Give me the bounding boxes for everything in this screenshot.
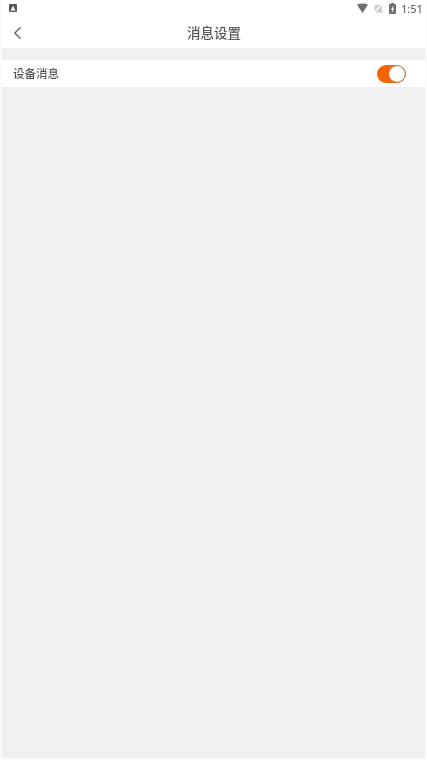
staticText: 消息设置 bbox=[187, 22, 241, 42]
other: App notification bbox=[9, 4, 17, 12]
button[interactable]: Device messages toggle bbox=[377, 65, 406, 83]
button[interactable]: Back bbox=[0, 17, 40, 48]
button[interactable]: 设备消息 bbox=[0, 60, 427, 87]
staticText: 设备消息 bbox=[13, 65, 59, 82]
staticText: 1:51 bbox=[401, 1, 423, 16]
